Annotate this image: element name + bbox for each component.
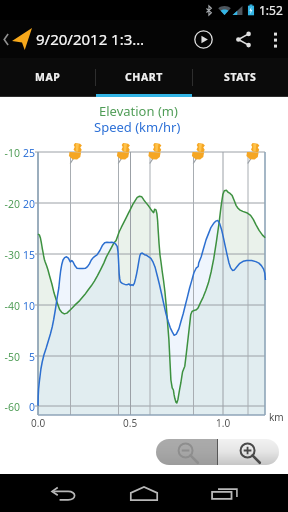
staticText: 5 [28,350,35,364]
staticText: -50 [4,350,20,364]
button[interactable]: Track [0,20,145,58]
staticText: -20 [4,197,20,211]
staticText: -40 [4,299,20,313]
button[interactable]: Recent apps [184,474,264,512]
staticText: km [269,410,284,424]
staticText: MAP [35,70,61,84]
staticText: 25 [22,146,35,160]
button[interactable]: Back [24,474,104,512]
staticText: 15 [22,248,35,262]
staticText: -10 [4,146,20,160]
button[interactable]: Play [182,20,224,58]
button[interactable]: MAP [0,58,96,97]
button[interactable]: More options [262,20,288,58]
button[interactable]: Zoom in [218,439,279,465]
staticText: -30 [4,248,20,262]
staticText: 0 [28,400,35,414]
staticText: 10 [22,299,35,313]
staticText: 0.5 [123,416,138,430]
staticText: 20 [22,197,35,211]
staticText: -60 [4,400,20,414]
staticText: 0.0 [31,416,46,430]
staticText: Speed (km/hr) [94,118,181,136]
button[interactable]: STATS [192,58,288,97]
button[interactable]: CHART [96,58,192,97]
staticText: Elevation (m) [99,102,178,120]
button[interactable]: Home [104,474,184,512]
staticText: CHART [125,70,163,84]
staticText: 9/20/2012 1:3… [36,29,145,49]
staticText: STATS [224,70,257,84]
other: Track [12,28,32,50]
button[interactable]: Share [224,20,262,58]
button[interactable]: Zoom out [156,439,217,465]
staticText: 1.0 [216,416,231,430]
staticText: 1:52 [259,2,283,18]
